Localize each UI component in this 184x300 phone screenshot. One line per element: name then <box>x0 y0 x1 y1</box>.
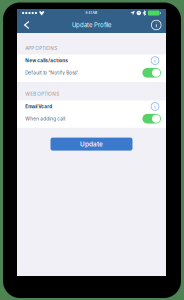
button[interactable]: Email Vcard <box>17 100 166 113</box>
staticText: Email Vcard <box>25 104 52 109</box>
button[interactable]: Update <box>50 138 132 151</box>
staticText: Update Profile <box>72 21 111 29</box>
staticText: 9:41 AM <box>85 11 97 15</box>
staticText: APP OPTIONS <box>25 45 57 51</box>
button[interactable]: New calls/actions <box>17 54 166 67</box>
button[interactable]: When adding call <box>17 113 166 125</box>
button[interactable]: Default to “Notify Boss” <box>17 67 166 79</box>
staticText: WEB OPTIONS <box>25 91 59 97</box>
staticText: New calls/actions <box>25 58 68 63</box>
staticText: Update <box>80 140 103 148</box>
staticText: Default to “Notify Boss” <box>25 70 78 76</box>
button[interactable]: Back <box>19 17 35 33</box>
button[interactable]: Information <box>148 17 164 33</box>
staticText: When adding call <box>25 116 65 121</box>
